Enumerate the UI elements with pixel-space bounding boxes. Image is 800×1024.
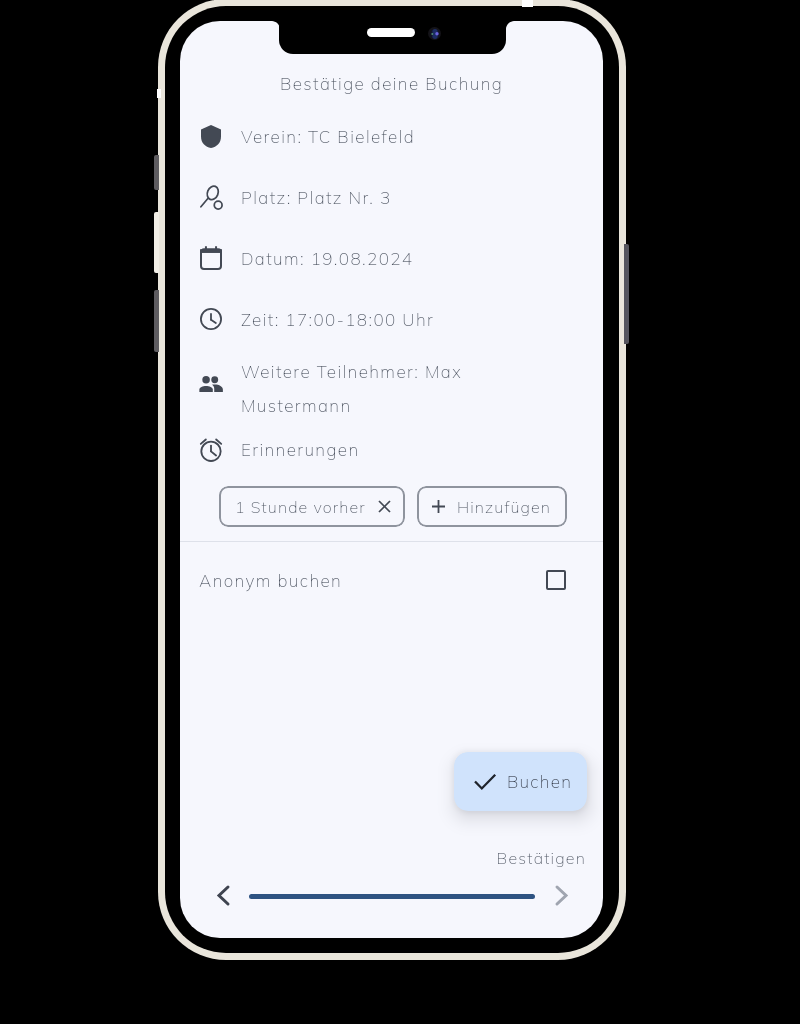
- staticText: Erinnerungen: [241, 439, 360, 460]
- staticText: Platz: Platz Nr. 3: [241, 187, 392, 208]
- staticText: Bestätigen: [180, 848, 586, 868]
- button[interactable]: Platz: Platz Nr. 3: [180, 183, 603, 221]
- staticText: Verein: TC Bielefeld: [241, 126, 416, 147]
- button[interactable]: Weiter: [544, 878, 578, 912]
- staticText: Weitere Teilnehmer: Max Mustermann: [241, 361, 463, 416]
- button[interactable]: Zurück: [206, 878, 240, 912]
- button[interactable]: Verein: TC Bielefeld: [180, 122, 603, 160]
- button[interactable]: Hinzufügen: [417, 486, 567, 527]
- staticText: Bestätige deine Buchung: [180, 73, 603, 94]
- button[interactable]: Erinnerungen: [180, 436, 603, 473]
- staticText: 1 Stunde vorher: [235, 497, 366, 517]
- button[interactable]: Zeit: 17:00-18:00 Uhr: [180, 305, 603, 343]
- staticText: Anonym buchen: [199, 570, 343, 591]
- staticText: Hinzufügen: [457, 497, 552, 517]
- button[interactable]: Weitere Teilnehmer: Max Mustermann: [180, 361, 603, 429]
- button[interactable]: 1 Stunde vorher: [219, 486, 405, 527]
- button[interactable]: Buchen: [454, 752, 587, 811]
- staticText: Zeit: 17:00-18:00 Uhr: [241, 309, 435, 330]
- staticText: Datum: 19.08.2024: [241, 248, 414, 269]
- button[interactable]: Datum: 19.08.2024: [180, 244, 603, 282]
- staticText: Buchen: [507, 771, 573, 792]
- button[interactable]: Anonym buchen: [180, 559, 603, 601]
